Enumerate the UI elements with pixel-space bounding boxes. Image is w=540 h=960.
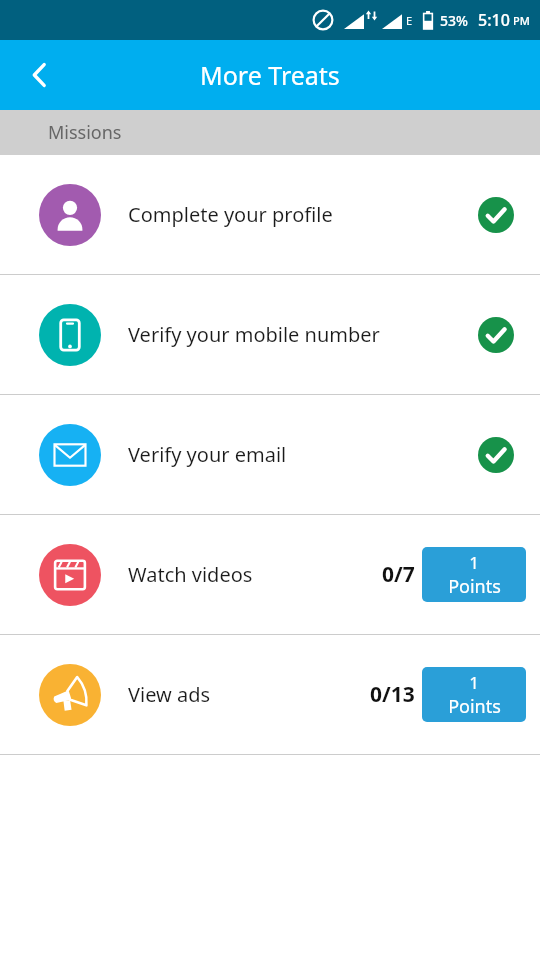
button[interactable]: Verify your mobile number [0,275,540,394]
staticText: 5:10 [478,9,510,31]
staticText: Points [448,694,501,719]
staticText: More Treats [200,58,340,92]
button[interactable]: 1 [422,667,526,722]
staticText: Watch videos [128,561,382,588]
button[interactable]: 1 [422,547,526,602]
button[interactable]: Completed [478,197,514,233]
staticText: View ads [128,681,370,708]
staticText: Missions [48,120,122,145]
staticText: Verify your email [128,441,478,468]
staticText: Verify your mobile number [128,321,478,348]
button[interactable]: Back [14,49,66,101]
staticText: 53% [440,11,468,30]
button[interactable]: View ads [0,635,540,754]
button[interactable]: Completed [478,437,514,473]
button[interactable]: Complete your profile [0,155,540,274]
staticText: 0/13 [370,680,415,709]
staticText: 1 [469,551,479,574]
staticText: 0/7 [382,560,415,589]
staticText: PM [513,13,530,28]
staticText: 1 [469,671,479,694]
staticText: Complete your profile [128,201,478,228]
button[interactable]: Completed [478,317,514,353]
button[interactable]: Watch videos [0,515,540,634]
staticText: E [406,13,413,28]
staticText: Points [448,574,501,599]
button[interactable]: Verify your email [0,395,540,514]
